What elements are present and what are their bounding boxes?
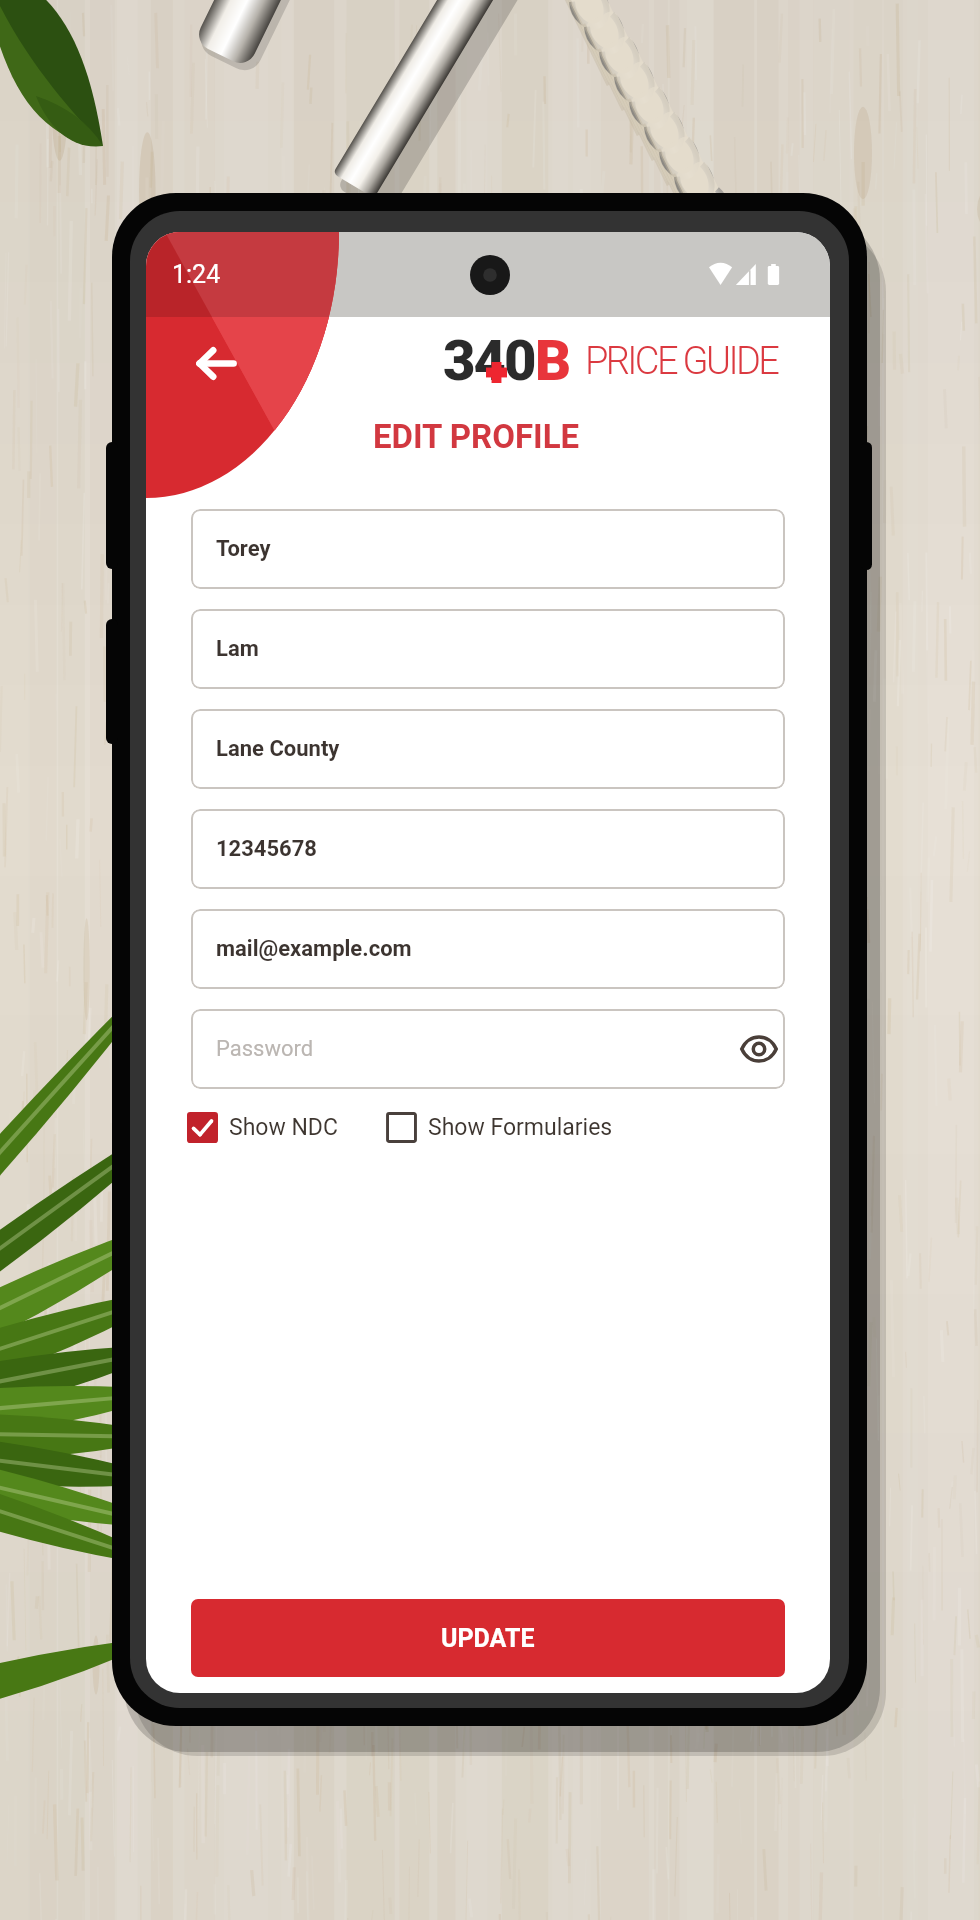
button[interactable]: Show password — [733, 1023, 785, 1075]
staticText: Password — [216, 1036, 314, 1062]
staticText: Lane County — [216, 736, 340, 762]
button[interactable]: 12345678 — [191, 809, 785, 889]
button[interactable]: Show Formularies — [386, 1112, 613, 1143]
staticText: B — [535, 328, 572, 394]
staticText: mail@example.com — [216, 936, 412, 962]
button[interactable]: Show NDC — [187, 1112, 338, 1143]
staticText: 12345678 — [216, 836, 317, 862]
button[interactable]: Torey — [191, 509, 785, 589]
button[interactable]: Back — [174, 323, 258, 403]
button[interactable]: Lane County — [191, 709, 785, 789]
staticText: PRICE GUIDE — [585, 339, 778, 384]
staticText: 340 — [443, 328, 535, 394]
staticText: Torey — [216, 536, 271, 562]
staticText: EDIT PROFILE — [146, 417, 818, 456]
staticText: UPDATE — [441, 1624, 535, 1653]
button[interactable]: UPDATE — [191, 1599, 785, 1677]
staticText: Show NDC — [229, 1114, 338, 1141]
staticText: Show Formularies — [428, 1114, 613, 1141]
staticText: Lam — [216, 636, 259, 662]
button[interactable]: mail@example.com — [191, 909, 785, 989]
staticText: 1:24 — [172, 260, 221, 289]
button[interactable]: Lam — [191, 609, 785, 689]
button[interactable]: Password — [191, 1009, 785, 1089]
